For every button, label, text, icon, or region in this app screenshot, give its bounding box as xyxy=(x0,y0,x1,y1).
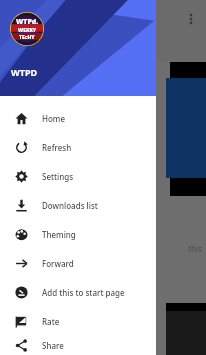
button[interactable]: More options xyxy=(182,10,200,28)
button[interactable]: Add this to start page xyxy=(0,278,156,307)
staticText: WEKKY xyxy=(18,27,37,34)
button[interactable]: Settings xyxy=(0,162,156,191)
staticText: Forward xyxy=(42,258,74,269)
staticText: Add this to start page xyxy=(42,287,125,298)
button[interactable]: Theming xyxy=(0,220,156,249)
staticText: Refresh xyxy=(42,142,72,153)
button[interactable]: Refresh xyxy=(0,133,156,162)
staticText: TEcHY xyxy=(19,34,35,41)
staticText: Theming xyxy=(42,229,76,240)
button[interactable]: Share xyxy=(0,336,156,355)
staticText: WTPD xyxy=(11,66,38,78)
staticText: Home xyxy=(42,113,66,124)
staticText: Downloads list xyxy=(42,200,98,211)
staticText: Settings xyxy=(42,171,74,182)
button[interactable]: Downloads list xyxy=(0,191,156,220)
button[interactable]: Rate xyxy=(0,307,156,336)
button[interactable]: Home xyxy=(0,104,156,133)
button[interactable]: Forward xyxy=(0,249,156,278)
staticText: WTPd. xyxy=(16,17,39,27)
staticText: Rate xyxy=(42,316,60,327)
staticText: Share xyxy=(42,340,64,351)
staticText: this xyxy=(188,243,202,254)
